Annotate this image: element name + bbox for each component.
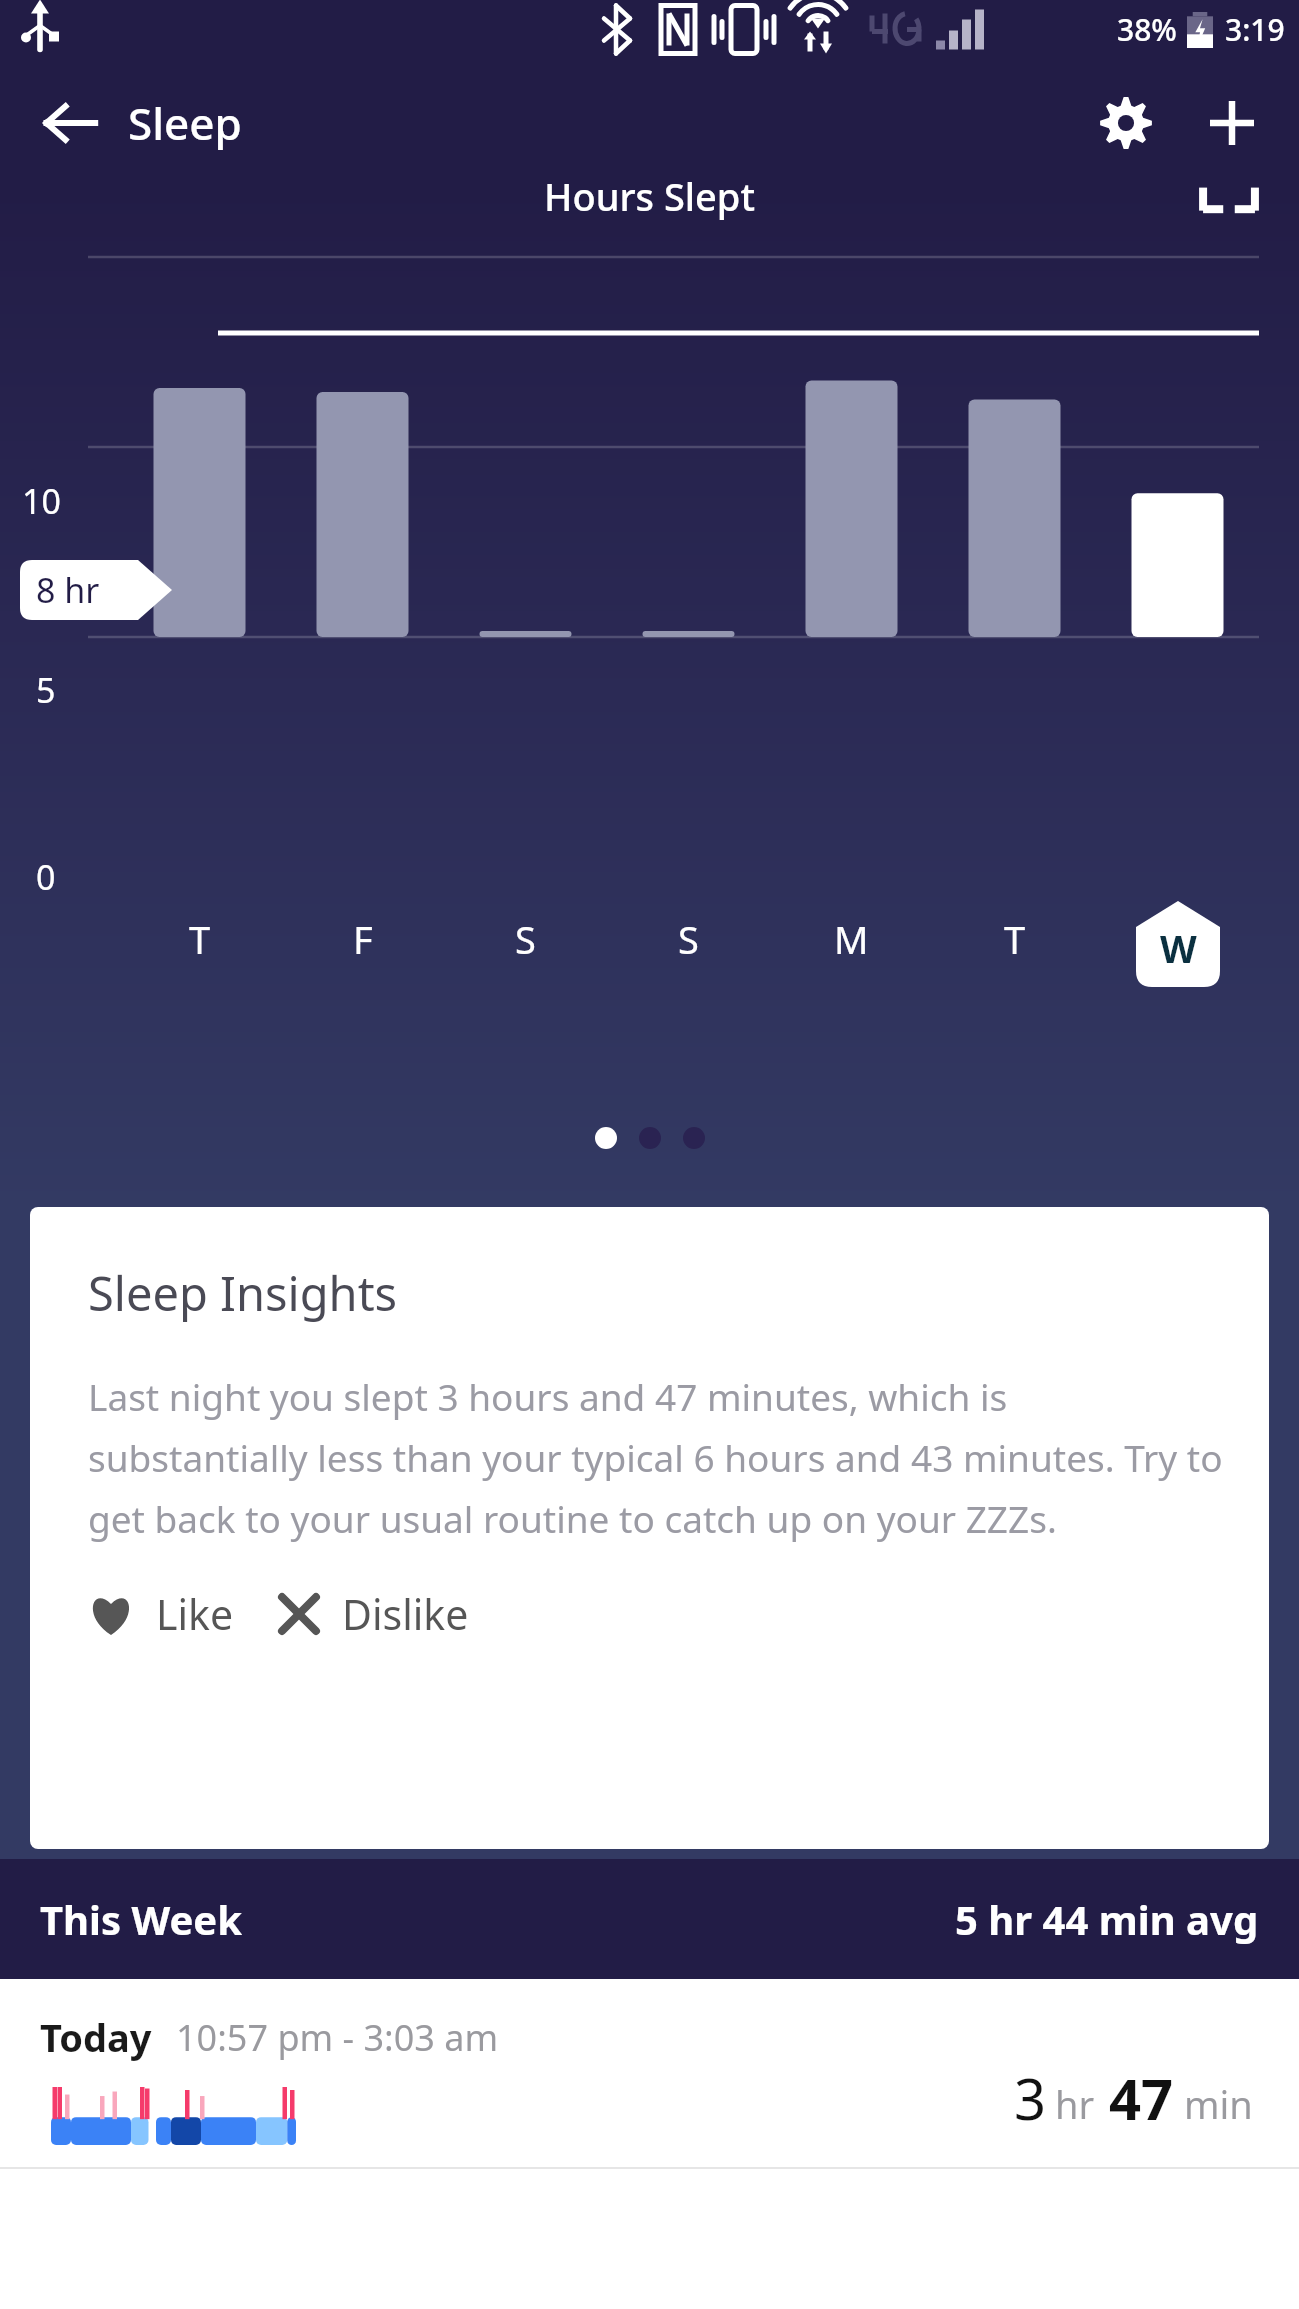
button[interactable]: Add <box>1189 80 1275 166</box>
staticText: hr <box>1055 2078 1095 2130</box>
button[interactable]: Today <box>0 1979 1299 2169</box>
staticText: 8 hr <box>36 567 100 613</box>
button[interactable] <box>639 1127 661 1149</box>
staticText: 10 <box>22 478 61 524</box>
staticText: 38% <box>1117 9 1177 50</box>
staticText: 10:57 pm - 3:03 am <box>176 2013 499 2062</box>
button[interactable]: Settings <box>1083 80 1169 166</box>
button[interactable]: Like <box>88 1586 244 1642</box>
staticText: Like <box>156 1586 234 1642</box>
button[interactable]: Expand chart <box>1193 166 1265 238</box>
button[interactable]: Dislike <box>278 1586 479 1642</box>
staticText: T <box>189 913 211 965</box>
staticText: T <box>1004 913 1026 965</box>
button[interactable]: Sleep Insights <box>30 1207 1269 1849</box>
staticText: Hours Slept <box>544 170 755 222</box>
staticText: 3 <box>1014 2060 1047 2136</box>
staticText: S <box>678 913 699 965</box>
button[interactable] <box>683 1127 705 1149</box>
staticText: M <box>834 913 869 965</box>
staticText: 3:19 <box>1225 9 1285 50</box>
staticText: Sleep <box>128 93 242 153</box>
staticText: 5 hr 44 min avg <box>955 1892 1259 1946</box>
staticText: F <box>353 913 373 965</box>
staticText: Last night you slept 3 hours and 47 minu… <box>88 1371 1223 1544</box>
staticText: This Week <box>40 1892 242 1946</box>
button[interactable]: This Week <box>0 1859 1299 1979</box>
staticText: min <box>1184 2078 1253 2130</box>
staticText: 0 <box>36 854 56 900</box>
button[interactable]: Back <box>28 81 112 165</box>
staticText: S <box>515 913 536 965</box>
button[interactable] <box>595 1127 617 1149</box>
staticText: W <box>1160 922 1197 974</box>
staticText: Sleep Insights <box>88 1261 398 1325</box>
staticText: Today <box>40 2011 152 2063</box>
staticText: Dislike <box>342 1586 469 1642</box>
staticText: 5 <box>36 667 56 713</box>
staticText: 47 <box>1109 2060 1174 2136</box>
